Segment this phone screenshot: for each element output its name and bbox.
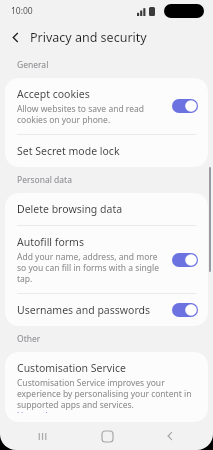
staticText: Customisation Service improves your expe…: [17, 377, 198, 410]
staticText: Customisation Service: [17, 361, 126, 375]
staticText: Accept cookies: [17, 87, 90, 101]
staticText: Set Secret mode lock: [17, 144, 120, 158]
staticText: Allow websites to save and read cookies …: [17, 103, 164, 125]
staticText: General: [17, 59, 49, 71]
staticText: Other: [17, 333, 41, 345]
button[interactable]: Back: [0, 22, 30, 52]
button[interactable]: Autofill forms: [5, 226, 208, 293]
button[interactable]: Accept cookies: [5, 78, 208, 134]
staticText: Autofill forms: [17, 235, 84, 249]
staticText: 10:00: [11, 5, 33, 17]
button[interactable]: Home: [87, 422, 127, 450]
button[interactable]: Customisation Service: [5, 352, 208, 422]
button[interactable]: Recents: [23, 422, 63, 450]
button[interactable]: Back: [150, 422, 190, 450]
staticText: Privacy and security: [30, 29, 147, 46]
staticText: Unused: [17, 410, 48, 413]
staticText: Personal data: [17, 174, 72, 186]
button[interactable]: Set Secret mode lock: [5, 135, 208, 167]
staticText: Add your name, address, and more so you …: [17, 251, 164, 284]
button[interactable]: Usernames and passwords: [5, 294, 208, 326]
button[interactable]: Delete browsing data: [5, 193, 208, 225]
staticText: Delete browsing data: [17, 202, 123, 216]
staticText: Usernames and passwords: [17, 303, 151, 317]
